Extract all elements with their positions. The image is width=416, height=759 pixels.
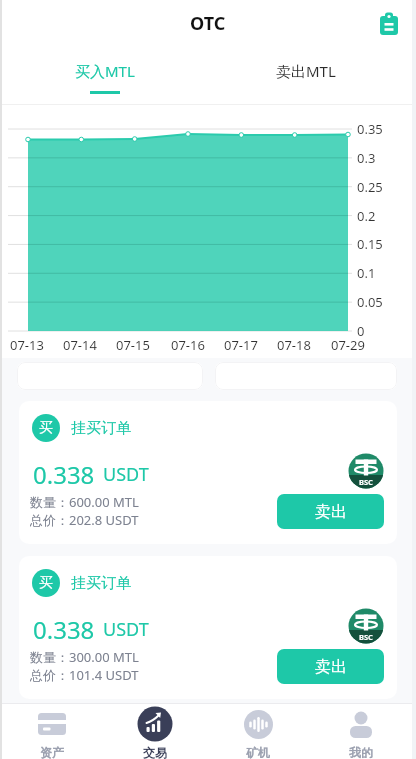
staticText: 07-13 [10,336,44,354]
button[interactable]: 资产 [0,703,103,759]
button[interactable]: 卖出MTL [208,48,416,105]
staticText: 总价：101.4 USDT [30,666,139,683]
staticText: 0.3 [357,149,376,167]
button[interactable]: 买 [19,556,397,699]
staticText: 0.05 [357,293,383,311]
staticText: 07-29 [331,336,365,354]
staticText: 交易 [143,745,167,759]
staticText: 卖出 [315,657,347,677]
staticText: 卖出 [315,502,347,522]
staticText: 买 [39,574,53,592]
staticText: USDT [103,462,149,487]
staticText: 07-18 [277,336,311,354]
staticText: 0.35 [357,120,383,138]
button[interactable]: 买 [19,401,397,544]
button[interactable]: 买入MTL [0,48,208,105]
staticText: 挂买订单 [71,574,131,593]
staticText: 数量：300.00 MTL [30,648,139,665]
staticText: 数量：600.00 MTL [30,493,139,510]
staticText: 07-16 [171,336,205,354]
staticText: 0.15 [357,235,383,253]
staticText: 0.338 [33,613,95,646]
staticText: 0.25 [357,178,383,196]
staticText: 买 [39,419,53,437]
staticText: 0 [357,322,365,340]
staticText: BSC [359,632,373,642]
button[interactable]: 我的 [309,703,412,759]
staticText: 0.1 [357,264,376,282]
button[interactable]: 矿机 [206,703,309,759]
staticText: 07-17 [224,336,258,354]
staticText: 我的 [349,745,373,759]
button[interactable]: 卖出 [277,494,384,529]
button[interactable]: 交易 [103,703,206,759]
staticText: 买入MTL [75,61,135,81]
staticText: USDT [103,617,149,642]
staticText: OTC [190,11,226,36]
button[interactable]: 卖出 [277,649,384,684]
button[interactable] [377,12,401,36]
staticText: 总价：202.8 USDT [30,511,139,528]
staticText: 0.338 [33,458,95,491]
staticText: 资产 [40,745,64,759]
staticText: 0.2 [357,207,376,225]
staticText: 07-15 [116,336,150,354]
staticText: 卖出MTL [276,61,336,81]
staticText: 矿机 [246,745,270,759]
staticText: 挂买订单 [71,419,131,438]
staticText: 07-14 [63,336,97,354]
staticText: BSC [359,477,373,487]
